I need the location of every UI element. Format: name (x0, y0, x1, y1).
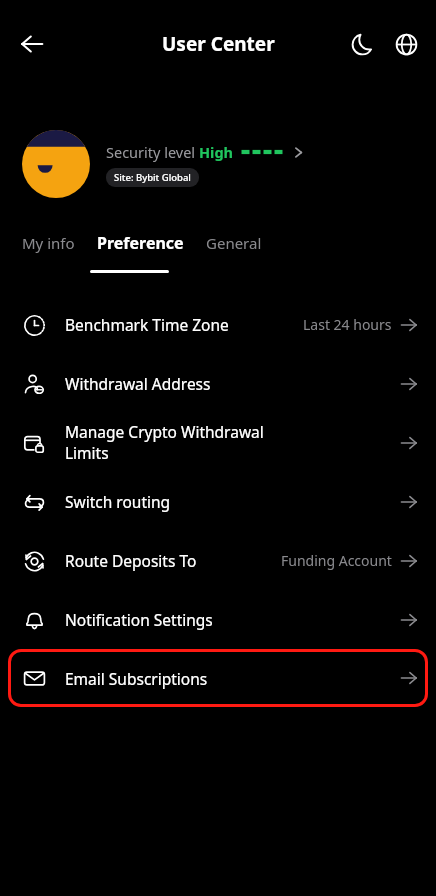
button[interactable]: Manage Crypto Withdrawal Limits (0, 413, 436, 472)
staticText: Notification Settings (65, 609, 400, 630)
button[interactable]: Switch routing (0, 472, 436, 531)
staticText: Withdrawal Address (65, 373, 400, 394)
button[interactable]: Notification Settings (0, 590, 436, 649)
staticText: Last 24 hours (303, 315, 392, 334)
staticText: Route Deposits To (65, 550, 281, 571)
button[interactable]: My info (22, 229, 75, 257)
staticText: High (199, 142, 234, 162)
button[interactable]: Email Subscriptions (8, 649, 428, 707)
staticText: General (206, 233, 262, 253)
button[interactable]: Benchmark Time Zone (0, 295, 436, 354)
button[interactable]: Preference (97, 228, 184, 258)
staticText: Email Subscriptions (65, 668, 400, 689)
staticText: Benchmark Time Zone (65, 314, 303, 335)
button[interactable]: Route Deposits To (0, 531, 436, 590)
staticText: Switch routing (65, 491, 400, 512)
button[interactable]: Back (10, 22, 54, 66)
button[interactable]: Dark mode (340, 22, 384, 66)
staticText: Manage Crypto Withdrawal Limits (65, 421, 400, 464)
staticText: Funding Account (281, 551, 392, 570)
button[interactable]: General (206, 229, 262, 257)
button[interactable]: Withdrawal Address (0, 354, 436, 413)
staticText: My info (22, 233, 75, 253)
staticText: Site: Bybit Global (114, 171, 191, 184)
button[interactable]: Language (384, 22, 428, 66)
staticText: Preference (97, 232, 184, 254)
staticText: Security level (106, 142, 199, 162)
staticText: User Center (162, 31, 275, 57)
